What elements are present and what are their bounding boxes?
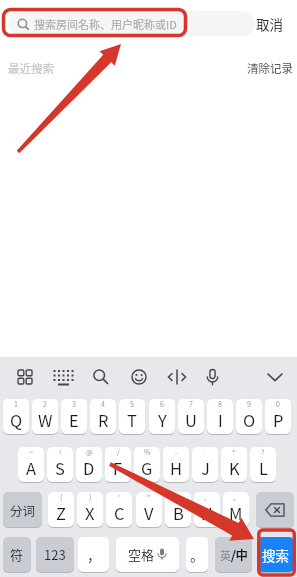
staticText: 123 xyxy=(44,545,66,564)
staticText: V xyxy=(144,501,154,525)
staticText: P xyxy=(273,408,284,432)
staticText: 符 xyxy=(10,545,24,564)
button[interactable]: % xyxy=(134,447,160,482)
button[interactable]: 1 xyxy=(3,399,29,434)
button[interactable]: " xyxy=(136,492,162,527)
staticText: 。 xyxy=(190,545,204,565)
staticText: X xyxy=(85,501,95,525)
staticText: /中 xyxy=(231,546,248,563)
button[interactable]: ) xyxy=(77,492,103,527)
button[interactable]: 7 xyxy=(178,399,204,434)
staticText: 9 xyxy=(247,399,251,409)
button[interactable] xyxy=(198,359,228,395)
button[interactable]: 取消 xyxy=(256,14,283,34)
button[interactable]: 0 xyxy=(265,399,291,434)
staticText: Q xyxy=(10,408,23,432)
button[interactable]: 6 xyxy=(149,399,175,434)
button[interactable]: ? xyxy=(250,447,276,482)
staticText: / xyxy=(117,447,120,457)
staticText: Y xyxy=(158,408,167,432)
staticText: 。 xyxy=(233,492,240,502)
staticText: · xyxy=(203,447,207,457)
button[interactable]: ， xyxy=(78,537,109,572)
staticText: C xyxy=(114,501,125,525)
button[interactable] xyxy=(124,359,154,395)
button[interactable]: - xyxy=(163,447,189,482)
staticText: J xyxy=(201,456,210,480)
staticText: 6 xyxy=(160,399,164,409)
button[interactable]: / xyxy=(105,447,131,482)
staticText: D xyxy=(83,456,95,480)
staticText: E xyxy=(69,408,79,432)
button[interactable]: 2 xyxy=(32,399,58,434)
staticText: G xyxy=(141,456,153,480)
button[interactable] xyxy=(256,492,294,527)
staticText: ， xyxy=(87,545,101,565)
button[interactable]: @ xyxy=(76,447,102,482)
button[interactable]: ~ xyxy=(18,447,44,482)
button[interactable] xyxy=(49,359,79,395)
button[interactable]: 。 xyxy=(186,537,208,572)
staticText: 2 xyxy=(43,399,47,409)
staticText: N xyxy=(201,501,213,525)
staticText: B xyxy=(173,501,184,525)
button[interactable]: 、 xyxy=(194,492,220,527)
button[interactable] xyxy=(10,359,40,395)
button[interactable] xyxy=(260,359,290,395)
staticText: * xyxy=(232,447,236,457)
staticText: 搜索 xyxy=(262,545,289,565)
staticText: W xyxy=(38,408,53,432)
staticText: ' xyxy=(118,492,120,502)
staticText: 3 xyxy=(72,399,76,409)
button[interactable]: 9 xyxy=(236,399,262,434)
button[interactable]: * xyxy=(221,447,247,482)
button[interactable]: · xyxy=(192,447,218,482)
staticText: 英 xyxy=(220,547,231,563)
button[interactable]: 清除记录 xyxy=(247,60,293,77)
staticText: I xyxy=(218,408,223,432)
staticText: ~ xyxy=(29,447,33,457)
button[interactable] xyxy=(86,359,116,395)
staticText: - xyxy=(175,447,178,457)
button[interactable]: ! xyxy=(47,447,73,482)
staticText: F xyxy=(113,456,123,480)
staticText: S xyxy=(55,456,65,480)
staticText: R xyxy=(98,408,109,432)
button[interactable]: ( xyxy=(48,492,74,527)
button[interactable] xyxy=(162,359,192,395)
staticText: O xyxy=(243,408,256,432)
staticText: M xyxy=(229,501,243,525)
button[interactable]: 123 xyxy=(36,537,74,572)
button[interactable]: 搜索 xyxy=(257,537,294,572)
staticText: ! xyxy=(59,447,62,457)
staticText: 搜索房间名称、用户昵称或ID xyxy=(34,16,177,32)
staticText: T xyxy=(127,408,137,432)
button[interactable]: 3 xyxy=(61,399,87,434)
staticText: 5 xyxy=(130,399,134,409)
staticText: U xyxy=(185,408,197,432)
staticText: K xyxy=(229,456,240,480)
staticText: 空格 xyxy=(128,545,155,564)
staticText: 最近搜索 xyxy=(8,60,54,77)
staticText: L xyxy=(259,456,268,480)
button[interactable]: 4 xyxy=(90,399,116,434)
button[interactable]: ' xyxy=(106,492,132,527)
button[interactable]: 5 xyxy=(119,399,145,434)
button[interactable]: 空格 xyxy=(116,537,179,572)
button[interactable]: 搜索房间名称、用户昵称或ID xyxy=(8,11,255,36)
staticText: 取消 xyxy=(256,14,283,34)
button[interactable]: 符 xyxy=(3,537,31,572)
button[interactable]: 分词 xyxy=(3,492,42,527)
staticText: ( xyxy=(60,492,63,502)
button[interactable]: 8 xyxy=(207,399,233,434)
staticText: @ xyxy=(86,447,93,457)
button[interactable]: 英 xyxy=(215,537,252,572)
staticText: … xyxy=(175,492,182,502)
staticText: 4 xyxy=(101,399,105,409)
staticText: % xyxy=(144,447,151,457)
staticText: Z xyxy=(56,501,66,525)
button[interactable]: 。 xyxy=(223,492,249,527)
staticText: 7 xyxy=(189,399,193,409)
button[interactable]: … xyxy=(165,492,191,527)
staticText: ) xyxy=(89,492,92,502)
